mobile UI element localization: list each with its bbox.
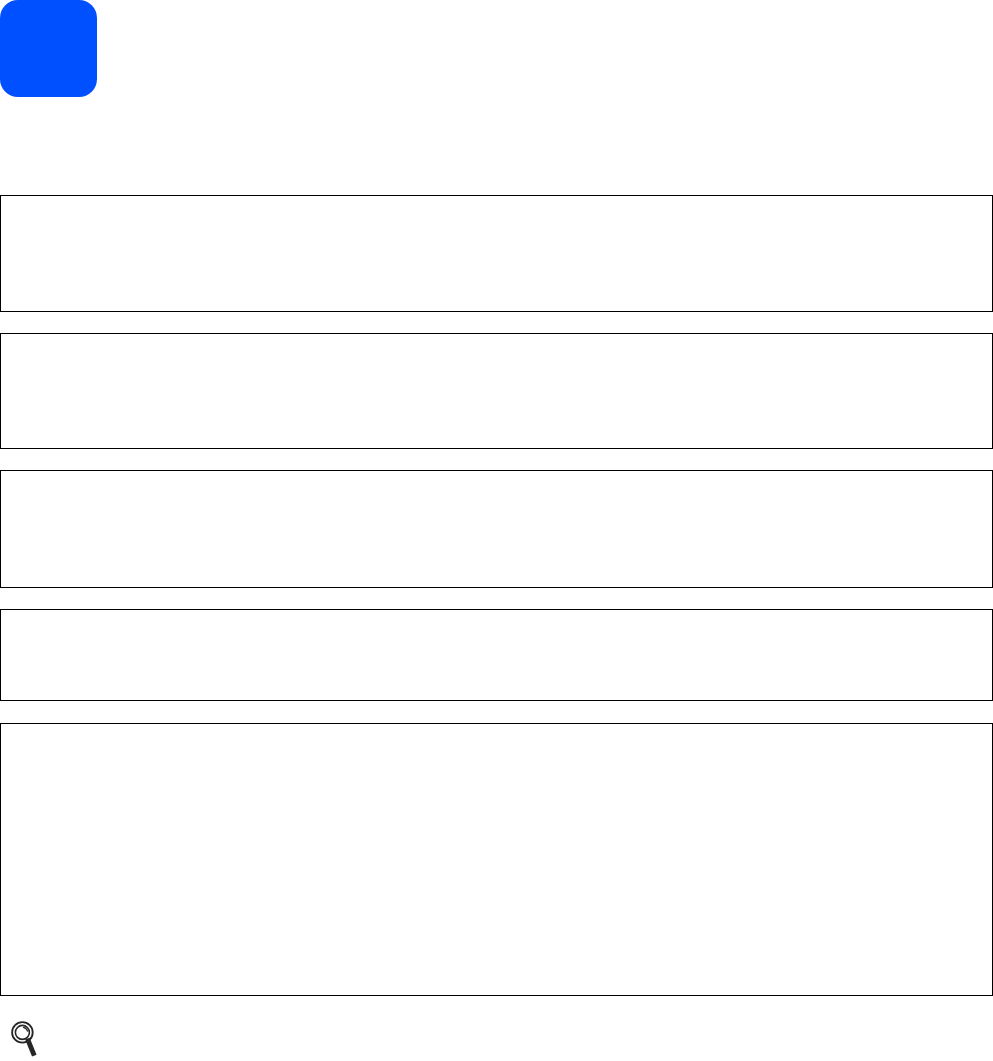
button[interactable]	[0, 723, 993, 996]
button[interactable]	[0, 333, 993, 449]
button[interactable]	[0, 609, 993, 701]
button[interactable]	[0, 470, 993, 588]
button[interactable]: Search	[8, 1018, 48, 1058]
button[interactable]: Open menu	[0, 0, 97, 97]
button[interactable]	[0, 195, 993, 312]
